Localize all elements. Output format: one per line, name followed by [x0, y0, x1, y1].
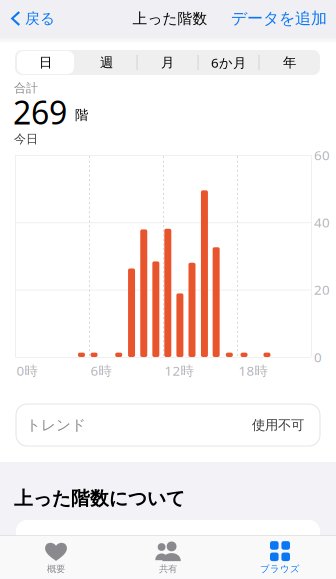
- staticText: 使用不可: [252, 417, 304, 433]
- staticText: 12時: [164, 362, 193, 379]
- staticText: 日: [39, 54, 52, 71]
- staticText: 6か月: [211, 54, 246, 71]
- staticText: ブラウズ: [260, 563, 300, 575]
- button[interactable]: トレンド: [16, 404, 320, 446]
- staticText: 40: [314, 213, 330, 231]
- staticText: 戻る: [25, 9, 55, 27]
- staticText: 合計: [14, 81, 38, 95]
- staticText: 6時: [90, 362, 111, 379]
- staticText: 共有: [159, 563, 177, 575]
- staticText: 0時: [16, 362, 37, 379]
- button[interactable]: 月: [137, 50, 198, 75]
- button[interactable]: 戻る: [0, 0, 63, 37]
- staticText: 上った階数について: [14, 487, 185, 510]
- staticText: 階: [75, 107, 88, 123]
- button[interactable]: 共有: [112, 536, 224, 579]
- staticText: 月: [161, 54, 174, 71]
- staticText: 0: [314, 348, 322, 366]
- staticText: 概要: [47, 563, 65, 575]
- button[interactable]: 日: [15, 50, 76, 75]
- staticText: 週: [100, 54, 113, 71]
- button[interactable]: 概要: [0, 536, 112, 579]
- staticText: 今日: [14, 132, 38, 146]
- staticText: トレンド: [26, 416, 86, 434]
- button[interactable]: データを追加: [223, 0, 336, 37]
- staticText: 60: [314, 146, 330, 164]
- staticText: 20: [314, 281, 330, 298]
- staticText: 269: [13, 91, 67, 133]
- staticText: 年: [283, 54, 296, 71]
- staticText: 18時: [238, 362, 267, 379]
- staticText: 上った階数: [132, 9, 207, 27]
- staticText: データを追加: [231, 9, 327, 28]
- button[interactable]: 6か月: [198, 50, 259, 75]
- button[interactable]: 年: [259, 50, 320, 75]
- button[interactable]: 週: [76, 50, 137, 75]
- button[interactable]: ブラウズ: [224, 536, 336, 579]
